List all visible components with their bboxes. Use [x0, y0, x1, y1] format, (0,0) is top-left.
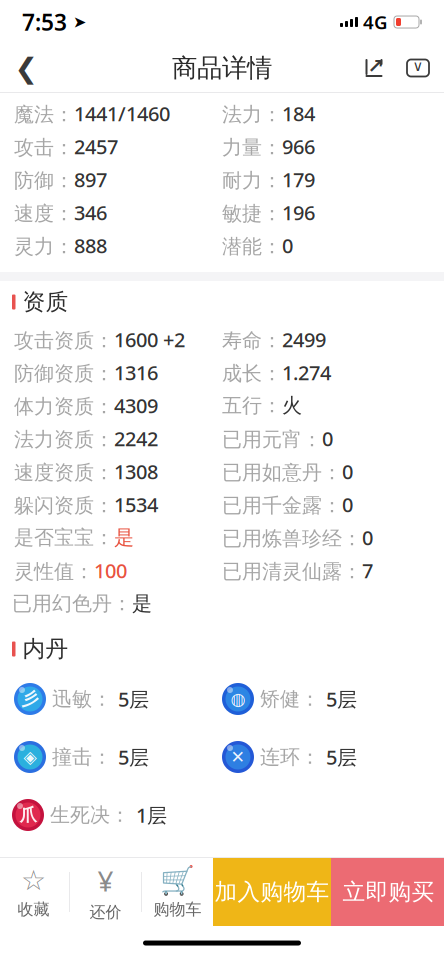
staticText: ✕: [230, 747, 245, 767]
staticText: 7: [362, 557, 373, 584]
staticText: 五行：: [222, 393, 282, 418]
staticText: 是: [132, 591, 152, 616]
staticText: 2242: [114, 425, 158, 452]
staticText: 攻击资质：: [14, 328, 114, 353]
button[interactable]: ☆: [0, 858, 69, 926]
staticText: 彡: [21, 688, 38, 710]
staticText: 5层: [326, 686, 357, 712]
staticText: ∨: [412, 58, 423, 74]
staticText: 1308: [114, 458, 158, 485]
staticText: 矫健：: [260, 687, 320, 711]
staticText: 5层: [118, 744, 149, 770]
staticText: 5层: [118, 686, 149, 712]
staticText: 法力资质：: [14, 427, 114, 452]
staticText: ❮: [14, 52, 37, 84]
staticText: 立即购买: [342, 878, 434, 906]
staticText: 2499: [282, 326, 326, 353]
button[interactable]: 消息: [396, 46, 440, 90]
staticText: 🛒: [160, 865, 195, 897]
staticText: ◍: [230, 689, 245, 709]
staticText: ◈: [23, 747, 36, 767]
staticText: ¥: [97, 862, 113, 899]
staticText: 耐力：: [222, 168, 282, 193]
staticText: 防御资质：: [14, 361, 114, 386]
staticText: 966: [282, 133, 315, 160]
staticText: 1.274: [282, 359, 331, 386]
staticText: 0: [362, 524, 373, 551]
staticText: 7:53: [22, 7, 67, 37]
staticText: 爪: [19, 804, 36, 826]
staticText: 1600 +2: [114, 326, 185, 353]
staticText: 已用千金露：: [222, 493, 342, 518]
staticText: 0: [342, 458, 353, 485]
staticText: 是: [114, 525, 134, 550]
staticText: 4309: [114, 392, 158, 419]
staticText: 0: [342, 491, 353, 518]
staticText: 连环：: [260, 745, 320, 769]
staticText: 888: [74, 232, 107, 259]
staticText: 内丹: [22, 635, 68, 663]
staticText: 成长：: [222, 361, 282, 386]
staticText: 购物车: [153, 900, 201, 919]
staticText: 商品详情: [172, 52, 272, 83]
staticText: 1441/1460: [74, 100, 170, 127]
staticText: 5层: [326, 744, 357, 770]
staticText: 346: [74, 199, 107, 226]
staticText: 是否宝宝：: [14, 525, 114, 550]
staticText: 196: [282, 199, 315, 226]
button[interactable]: 🛒: [142, 858, 213, 926]
button[interactable]: 立即购买: [331, 858, 444, 926]
staticText: 敏捷：: [222, 201, 282, 226]
staticText: ➤: [67, 13, 86, 31]
staticText: 0: [282, 232, 293, 259]
staticText: 撞击：: [52, 745, 112, 769]
staticText: 迅敏：: [52, 687, 112, 711]
staticText: 灵性值：: [14, 559, 94, 584]
staticText: 已用清灵仙露：: [222, 559, 362, 584]
staticText: 法力：: [222, 102, 282, 127]
button[interactable]: 返回: [4, 46, 48, 90]
staticText: 100: [94, 557, 127, 584]
staticText: 已用幻色丹：: [12, 591, 132, 616]
staticText: 还价: [89, 902, 121, 922]
staticText: 184: [282, 100, 315, 127]
staticText: ↗: [367, 55, 384, 77]
staticText: 生死决：: [50, 803, 130, 827]
staticText: 加入购物车: [214, 878, 329, 906]
staticText: 魔法：: [14, 102, 74, 127]
staticText: 已用如意丹：: [222, 460, 342, 485]
staticText: 2457: [74, 133, 118, 160]
staticText: 897: [74, 166, 107, 193]
staticText: 179: [282, 166, 315, 193]
staticText: 1534: [114, 491, 158, 518]
staticText: 攻击：: [14, 135, 74, 160]
staticText: 资质: [22, 288, 68, 316]
staticText: 1层: [136, 802, 167, 828]
staticText: 体力资质：: [14, 394, 114, 419]
button[interactable]: ¥: [70, 858, 141, 926]
staticText: 0: [322, 425, 333, 452]
button[interactable]: 加入购物车: [213, 858, 331, 926]
staticText: 寿命：: [222, 328, 282, 353]
staticText: 1316: [114, 359, 158, 386]
staticText: 速度资质：: [14, 460, 114, 485]
staticText: ☆: [21, 865, 46, 897]
staticText: 力量：: [222, 135, 282, 160]
staticText: 已用炼兽珍经：: [222, 526, 362, 551]
staticText: 速度：: [14, 201, 74, 226]
staticText: 潜能：: [222, 234, 282, 259]
button[interactable]: 分享: [352, 46, 396, 90]
staticText: 收藏: [17, 900, 49, 919]
staticText: 火: [282, 393, 302, 418]
staticText: 灵力：: [14, 234, 74, 259]
staticText: 4G: [363, 10, 388, 34]
staticText: 防御：: [14, 168, 74, 193]
staticText: 已用元宵：: [222, 427, 322, 452]
staticText: 躲闪资质：: [14, 493, 114, 518]
